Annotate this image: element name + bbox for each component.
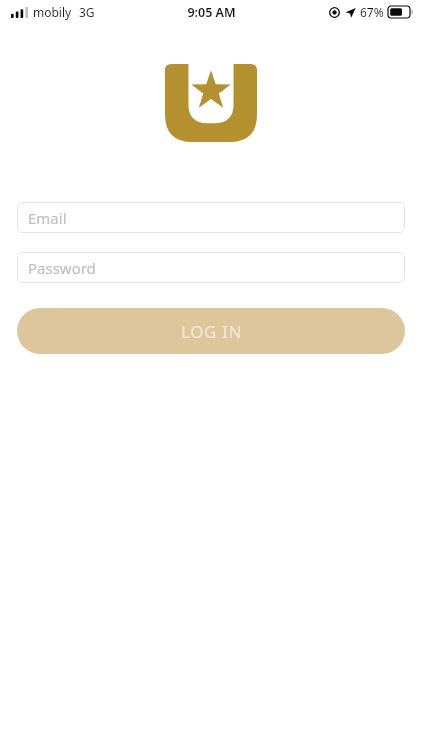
staticText: Email [28,208,67,228]
button[interactable]: Email [17,202,405,233]
button[interactable]: Password [17,252,405,283]
button[interactable]: LOG IN [17,308,405,354]
staticText: Password [28,258,96,278]
staticText: mobily [33,4,72,20]
staticText: 3G [79,4,95,20]
staticText: LOG IN [181,320,242,343]
staticText: 9:05 AM [187,4,236,21]
staticText: 67% [360,4,384,20]
